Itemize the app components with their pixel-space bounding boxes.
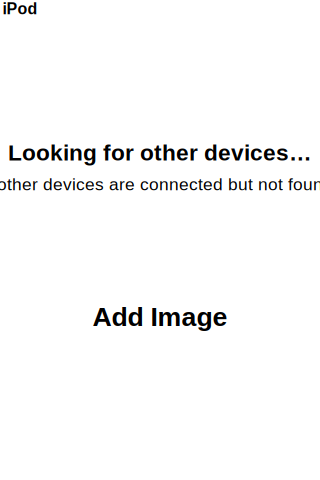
staticText: iPod bbox=[2, 0, 37, 18]
staticText: Looking for other devices… bbox=[8, 140, 312, 165]
staticText: If other devices are connected but not f… bbox=[0, 174, 320, 194]
staticText: Add Image bbox=[92, 302, 227, 332]
